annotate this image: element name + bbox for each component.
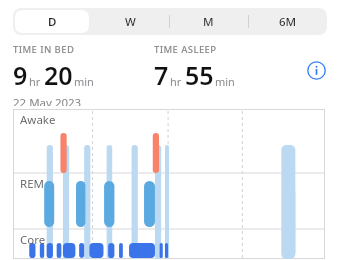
staticText: 6M [279,14,297,30]
button[interactable]: 6M [248,8,327,35]
staticText: TIME IN BED [13,43,75,56]
staticText: D [48,14,57,30]
staticText: min [74,74,94,89]
staticText: W [125,14,136,30]
staticText: TIME ASLEEP [154,43,217,56]
staticText: hr [170,74,182,89]
button[interactable]: D [13,8,91,35]
staticText: REM [20,176,44,192]
staticText: 55 [185,58,214,92]
staticText: hr [29,74,41,89]
button[interactable]: W [91,8,169,35]
staticText: Awake [20,112,56,128]
staticText: Core [20,232,46,248]
staticText: M [203,14,214,30]
staticText: 9 [13,58,28,92]
staticText: 22 May 2023 [13,95,82,106]
staticText: min [215,74,235,89]
staticText: 7 [154,58,169,92]
button[interactable]: M [169,8,248,35]
button[interactable]: Information [305,59,327,81]
staticText: 20 [44,58,73,92]
